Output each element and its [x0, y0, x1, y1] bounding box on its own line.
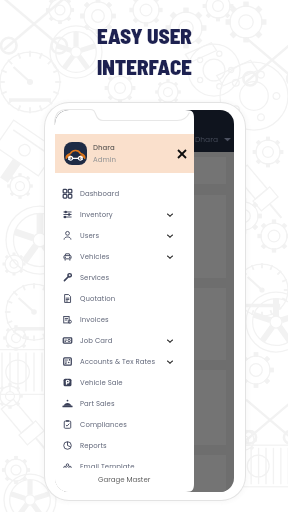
staticText: Dhara [195, 134, 219, 144]
button[interactable]: Job Card [55, 330, 194, 351]
button[interactable]: Users [55, 225, 194, 246]
button[interactable]: Compliances [55, 414, 194, 435]
staticText: Inventory [80, 210, 113, 220]
staticText: Admin [93, 155, 116, 165]
staticText: Dhara [93, 143, 115, 153]
staticText: Vehicle Sale [80, 378, 123, 388]
staticText: Job Card [80, 336, 113, 346]
staticText: Part Sales [80, 399, 115, 409]
button[interactable]: Vehicles [55, 246, 194, 267]
staticText: Email Template [80, 462, 135, 472]
button[interactable]: Accounts & Tex Rates [55, 351, 194, 372]
staticText: Invoices [80, 315, 109, 325]
button[interactable]: Services [55, 267, 194, 288]
staticText: Users [80, 231, 100, 241]
staticText: Reports [80, 441, 107, 451]
staticText: Dashboard [80, 189, 120, 199]
staticText: INTERFACE [97, 54, 192, 79]
button[interactable]: Invoices [55, 309, 194, 330]
button[interactable]: Quotation [55, 288, 194, 309]
staticText: Compliances [80, 420, 127, 430]
staticText: Quotation [80, 294, 116, 304]
staticText: EASY USER [97, 23, 192, 48]
staticText: Vehicles [80, 252, 110, 262]
button[interactable]: Email Template [55, 456, 194, 477]
staticText: Services [80, 273, 110, 283]
button[interactable]: Dashboard [55, 183, 194, 204]
button[interactable]: Reports [55, 435, 194, 456]
button[interactable]: Vehicle Sale [55, 372, 194, 393]
button[interactable]: Garage Master [55, 468, 194, 492]
button[interactable]: Part Sales [55, 393, 194, 414]
staticText: Garage Master [98, 475, 151, 485]
button[interactable]: Dhara [195, 134, 231, 144]
button[interactable]: Close menu [175, 147, 189, 161]
button[interactable]: Inventory [55, 204, 194, 225]
staticText: Accounts & Tex Rates [80, 357, 156, 367]
